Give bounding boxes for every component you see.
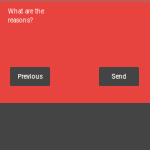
staticText: Previous	[17, 73, 42, 80]
button[interactable]: Send	[99, 67, 139, 86]
staticText: What are the	[8, 7, 44, 15]
staticText: Send	[111, 73, 126, 80]
button[interactable]: Previous	[10, 67, 50, 86]
staticText: reasons?	[8, 16, 33, 24]
